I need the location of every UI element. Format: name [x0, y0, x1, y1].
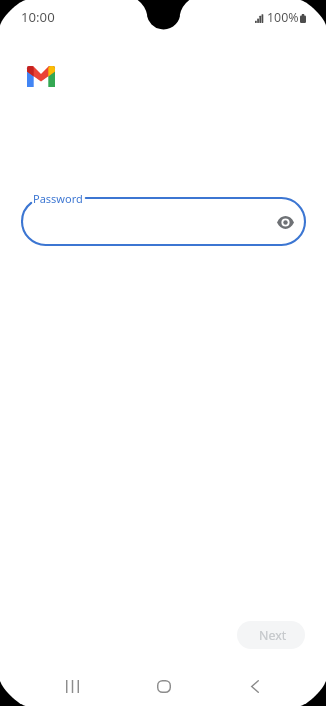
button[interactable]: Recent apps: [52, 677, 92, 696]
button[interactable]: Next: [237, 621, 305, 649]
button[interactable]: Home: [144, 677, 184, 696]
staticText: Next: [259, 627, 287, 644]
button[interactable]: Back: [235, 677, 275, 696]
staticText: 10:00: [21, 8, 55, 26]
staticText: 100%: [267, 9, 299, 26]
button[interactable]: Show password: [269, 206, 301, 238]
staticText: Password: [33, 191, 83, 206]
